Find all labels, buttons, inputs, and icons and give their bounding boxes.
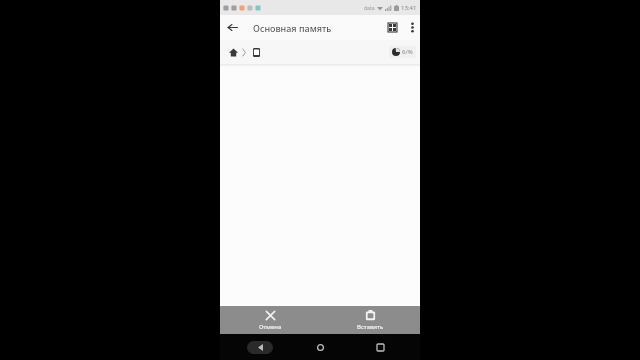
- button[interactable]: Основная память: [248, 44, 264, 60]
- staticText: Основная память: [253, 22, 380, 34]
- button[interactable]: Главный экран: [300, 334, 340, 360]
- button[interactable]: Назад: [240, 334, 280, 360]
- button[interactable]: Вид сеткой: [380, 15, 405, 40]
- button[interactable]: 6/%: [389, 46, 416, 58]
- button[interactable]: Назад: [220, 15, 245, 40]
- staticText: data: [364, 5, 375, 12]
- staticText: Отмена: [259, 323, 282, 331]
- staticText: 6/%: [402, 48, 413, 56]
- button[interactable]: Ещё: [405, 15, 420, 40]
- button[interactable]: Последние приложения: [360, 334, 400, 360]
- button[interactable]: Отмена: [220, 306, 320, 334]
- staticText: 13:41: [401, 4, 417, 12]
- button[interactable]: Корневая папка: [225, 44, 241, 60]
- button[interactable]: Вставить: [320, 306, 420, 334]
- staticText: Вставить: [357, 323, 384, 331]
